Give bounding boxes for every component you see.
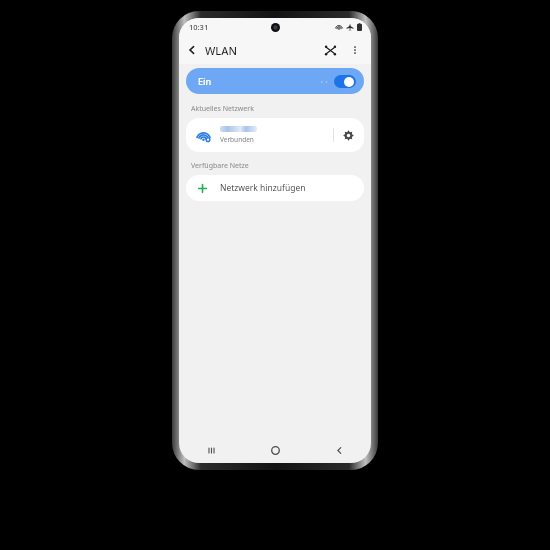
staticText: WLAN <box>205 43 237 58</box>
staticText: Ein <box>198 75 212 87</box>
button[interactable]: Verbunden <box>186 118 328 152</box>
staticText: Verbunden <box>220 135 254 144</box>
button[interactable]: Netzwerk hinzufügen <box>186 175 364 201</box>
button[interactable]: Intelligentes WLAN <box>317 37 343 63</box>
staticText: 10:31 <box>189 22 209 32</box>
staticText: Aktuelles Netzwerk <box>191 104 254 114</box>
button[interactable]: Netzwerkeinstellungen <box>337 124 359 146</box>
button[interactable]: Zurück <box>307 437 371 463</box>
button[interactable]: Zurück <box>179 37 205 63</box>
staticText: Verfügbare Netze <box>191 161 249 171</box>
button[interactable]: Letzte Apps <box>179 437 243 463</box>
button[interactable]: Ein <box>186 68 364 94</box>
button[interactable]: Startbildschirm <box>243 437 307 463</box>
button[interactable]: Weitere Optionen <box>343 38 367 62</box>
staticText: Netzwerk hinzufügen <box>220 182 306 194</box>
